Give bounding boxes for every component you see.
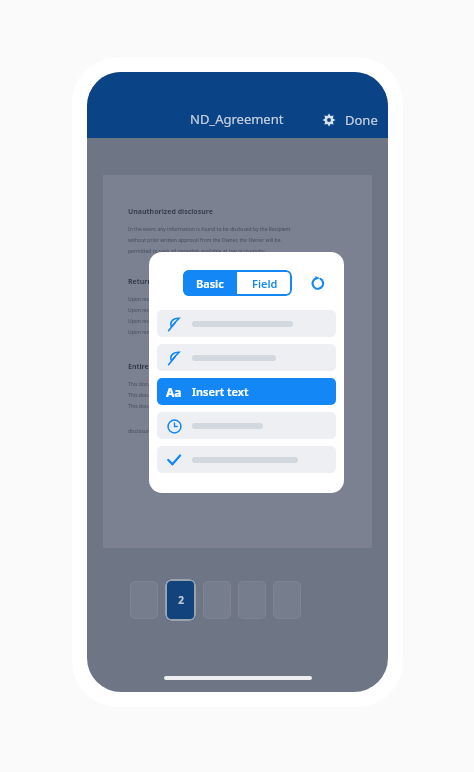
- staticText: permitted to seek all remedies available…: [128, 248, 266, 255]
- button[interactable]: Basic: [183, 270, 237, 296]
- staticText: This document contains the entire agreem…: [128, 403, 276, 410]
- staticText: Upon request the Recipient shall return …: [128, 296, 248, 303]
- staticText: This document contains the entire agreem…: [128, 381, 276, 388]
- button[interactable]: [157, 344, 336, 371]
- staticText: disclosure agreement.: [128, 428, 181, 435]
- staticText: ND_Agreement: [190, 110, 284, 128]
- staticText: Return of information: [128, 277, 205, 287]
- staticText: This document contains the entire agreem…: [128, 392, 276, 399]
- staticText: In the event any information is found to…: [128, 226, 291, 233]
- staticText: Unauthorized disclosure: [128, 207, 213, 217]
- staticText: 2: [178, 593, 184, 607]
- staticText: Insert text: [192, 384, 249, 399]
- button[interactable]: [157, 446, 336, 473]
- staticText: Upon request the Recipient shall return …: [128, 318, 248, 325]
- staticText: Field: [252, 276, 278, 291]
- button[interactable]: Settings: [319, 110, 378, 130]
- staticText: Entire agreement: [128, 362, 190, 372]
- staticText: Upon request the Recipient shall return …: [128, 307, 248, 314]
- button[interactable]: Aa: [157, 378, 336, 405]
- button[interactable]: [157, 310, 336, 337]
- button[interactable]: Reset: [306, 271, 330, 295]
- staticText: Upon request the Recipient shall return …: [128, 329, 248, 336]
- staticText: Basic: [196, 276, 224, 291]
- staticText: Done: [345, 111, 378, 129]
- other: Settings: [319, 110, 339, 130]
- button[interactable]: Field: [237, 270, 292, 296]
- staticText: without prior written approval from the …: [128, 237, 281, 244]
- button[interactable]: [157, 412, 336, 439]
- button[interactable]: 2: [165, 579, 196, 621]
- staticText: Aa: [166, 384, 182, 400]
